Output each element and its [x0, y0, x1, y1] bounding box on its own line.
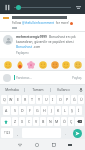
button[interactable]: J: [48, 106, 54, 115]
button[interactable]: T: [29, 95, 35, 104]
button[interactable]: O: [57, 95, 63, 104]
staticText: K: [57, 108, 60, 113]
button[interactable]: Home: [28, 139, 45, 150]
staticText: I: [52, 97, 54, 102]
staticText: W: [9, 97, 13, 102]
staticText: S: [14, 108, 16, 113]
button[interactable]: K: [55, 106, 61, 115]
staticText: L: [64, 108, 66, 113]
staticText: X: [21, 119, 24, 124]
staticText: Tamam: [32, 88, 44, 92]
button[interactable]: Ü: [78, 95, 84, 104]
button[interactable]: Emoji: [73, 60, 82, 69]
staticText: D: [21, 108, 24, 113]
button[interactable]: S: [11, 106, 18, 115]
button[interactable]: M: [54, 117, 60, 126]
staticText: F: [29, 108, 31, 113]
staticText: E: [17, 97, 19, 102]
staticText: Follow: [12, 21, 22, 25]
staticText: Ğ: [73, 97, 76, 102]
button[interactable]: Follow: [0, 14, 85, 31]
staticText: U: [45, 97, 48, 102]
button[interactable]: Ş: [69, 106, 75, 115]
button[interactable]: Merhaba: [0, 85, 24, 94]
button[interactable]: L: [62, 106, 68, 115]
button[interactable]: Z: [12, 117, 18, 126]
staticText: Ş: [71, 108, 73, 113]
button[interactable]: Ç: [68, 117, 74, 126]
staticText: Y: [38, 97, 41, 102]
staticText: @thefullcinfocomment: [22, 21, 55, 25]
staticText: ,: [17, 131, 18, 136]
staticText: mehmetcengiz9999: [16, 35, 47, 39]
staticText: Z: [14, 119, 17, 124]
button[interactable]: Backspace: [75, 117, 84, 126]
staticText: Q: [3, 97, 6, 102]
button[interactable]: R: [22, 95, 28, 104]
button[interactable]: Back: [11, 139, 28, 150]
button[interactable]: Recents: [45, 139, 62, 150]
button[interactable]: Hide keyboard: [62, 139, 78, 150]
button[interactable]: mehmetcengiz9999: [0, 32, 85, 58]
button[interactable]: Emoji: [26, 60, 35, 69]
button[interactable]: Send: [70, 128, 84, 138]
button[interactable]: H: [41, 106, 47, 115]
button[interactable]: N: [47, 117, 53, 126]
button[interactable]: Q: [1, 95, 7, 104]
button[interactable]: Tamam: [25, 85, 50, 94]
button[interactable]: Y: [36, 95, 42, 104]
staticText: Ü: [80, 97, 83, 102]
button[interactable]: E: [15, 95, 21, 104]
staticText: kazandıran, güvenilir ve popüleri sitesi: [16, 40, 74, 44]
staticText: .com: [33, 45, 41, 49]
button[interactable]: Emoji: [15, 60, 24, 69]
staticText: .: [65, 131, 66, 136]
button[interactable]: B: [40, 117, 46, 126]
button[interactable]: W: [8, 95, 14, 104]
button[interactable]: Comma: [14, 128, 21, 138]
staticText: Ö: [63, 119, 66, 124]
staticText: for more!: [55, 21, 69, 25]
button[interactable]: U: [43, 95, 49, 104]
button[interactable]: Pause: [3, 3, 12, 12]
staticText: G: [36, 108, 39, 113]
button[interactable]: F: [27, 106, 33, 115]
button[interactable]: Ğ: [71, 95, 77, 104]
staticText: C: [28, 119, 31, 124]
button[interactable]: V: [33, 117, 39, 126]
button[interactable]: Yanıtınızı…: [0, 71, 85, 84]
staticText: V: [35, 119, 38, 124]
button[interactable]: Kullanıcı: [51, 85, 76, 94]
staticText: P: [66, 97, 69, 102]
button[interactable]: Ö: [61, 117, 67, 126]
staticText: Paylaşımı: [16, 51, 29, 55]
button[interactable]: Seek: [14, 2, 71, 12]
staticText: A: [5, 108, 8, 113]
button[interactable]: I: [50, 95, 56, 104]
button[interactable]: Emoji: [38, 60, 47, 69]
staticText: ?123: [4, 131, 11, 135]
button[interactable]: D: [19, 106, 26, 115]
button[interactable]: İ: [76, 106, 82, 115]
button[interactable]: ?123: [1, 128, 13, 138]
staticText: B: [42, 119, 45, 124]
button[interactable]: C: [26, 117, 32, 126]
button[interactable]: Voice input: [76, 85, 85, 94]
staticText: N: [49, 119, 52, 124]
button[interactable]: G: [34, 106, 40, 115]
button[interactable]: P: [64, 95, 70, 104]
button[interactable]: X: [19, 117, 25, 126]
staticText: Kullanıcı: [57, 88, 70, 92]
button[interactable]: More options: [74, 3, 82, 11]
staticText: Bonushost: [16, 45, 33, 49]
staticText: İ: [78, 108, 80, 113]
staticText: Paylaş: [72, 76, 82, 80]
button[interactable]: Emoji: [61, 60, 70, 69]
button[interactable]: Shift: [1, 117, 11, 126]
button[interactable]: Emoji: [3, 60, 12, 69]
button[interactable]: A: [3, 106, 10, 115]
staticText: Bonushost en çok: [49, 35, 76, 39]
button[interactable]: Emoji: [50, 60, 59, 69]
